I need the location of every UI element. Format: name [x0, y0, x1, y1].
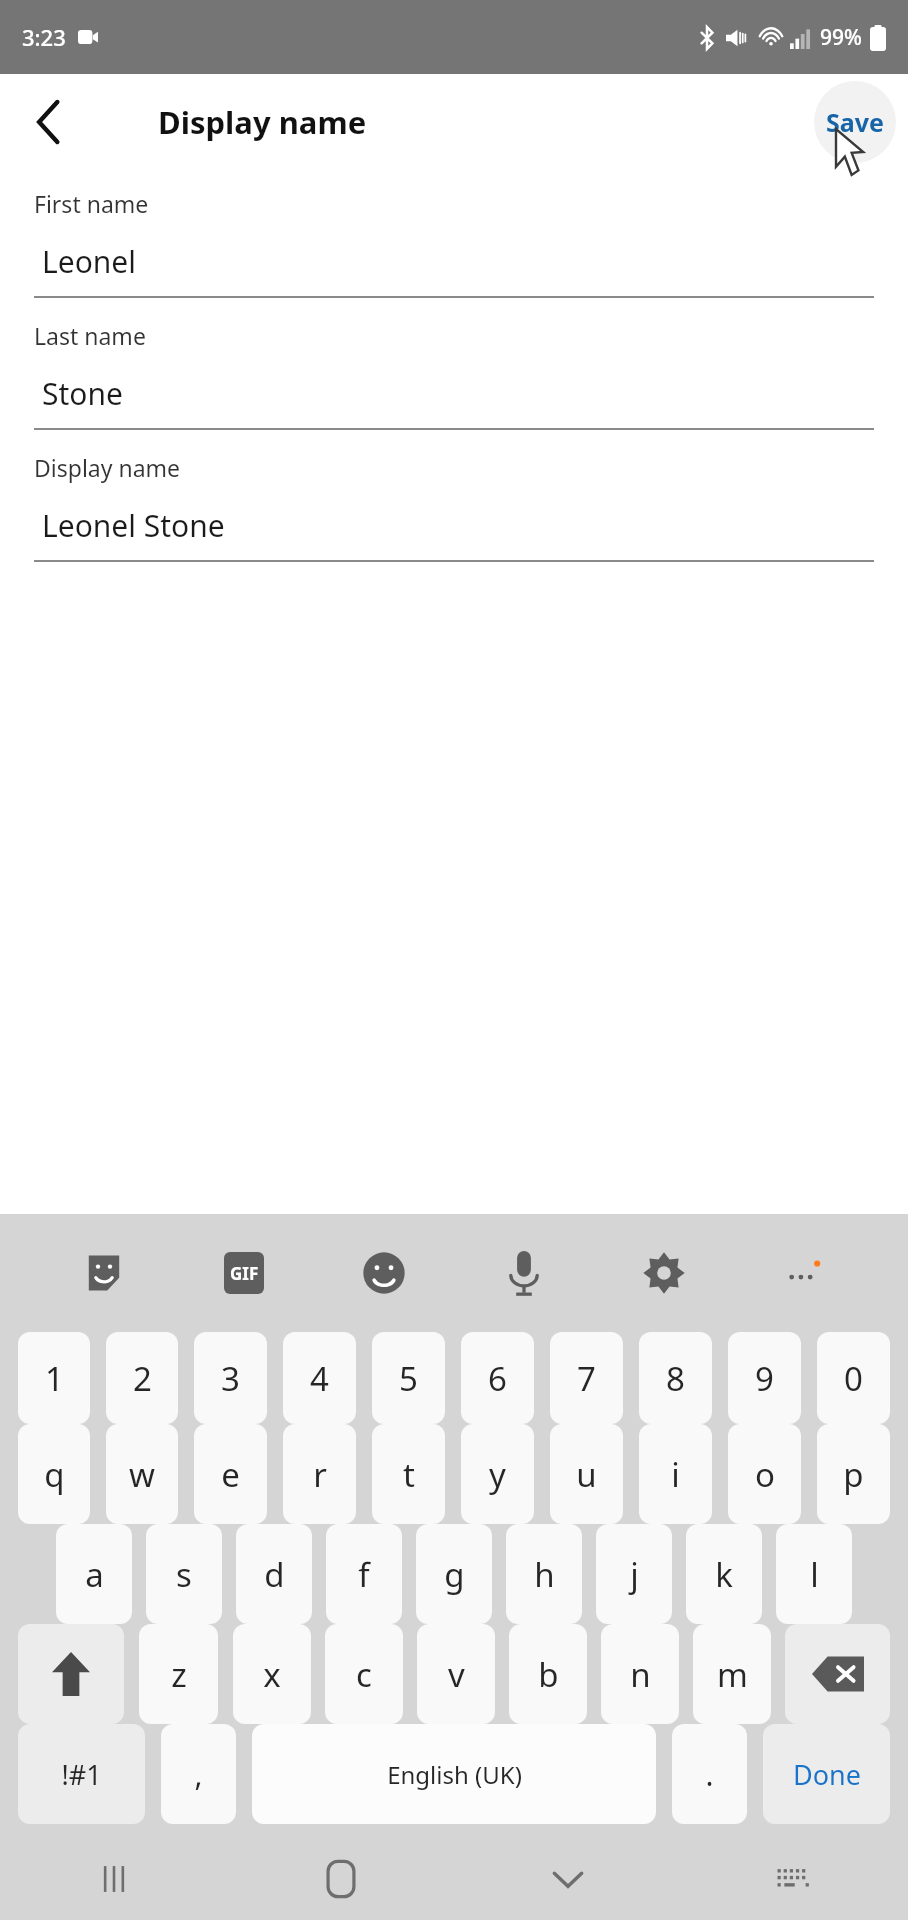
button[interactable]: Back	[18, 91, 80, 153]
button[interactable]: e	[194, 1424, 267, 1524]
button[interactable]: Recent apps	[0, 1838, 227, 1920]
button[interactable]: v	[417, 1624, 495, 1724]
button[interactable]: ,	[161, 1724, 236, 1824]
button[interactable]: Leonel	[34, 241, 874, 298]
button[interactable]: Hide keyboard	[454, 1838, 681, 1920]
button[interactable]: q	[18, 1424, 90, 1524]
staticText: 6	[488, 1356, 507, 1401]
button[interactable]: 4	[283, 1332, 356, 1424]
staticText: Last name	[34, 320, 146, 351]
button[interactable]: 5	[372, 1332, 445, 1424]
staticText: d	[264, 1552, 285, 1597]
staticText: n	[630, 1652, 651, 1697]
staticText: 7	[577, 1356, 596, 1401]
staticText: Leonel	[42, 241, 136, 282]
button[interactable]: c	[325, 1624, 403, 1724]
button[interactable]: !#1	[18, 1724, 145, 1824]
staticText: !#1	[61, 1756, 102, 1793]
staticText: 5	[399, 1356, 418, 1401]
button[interactable]: Leonel Stone	[34, 505, 874, 562]
staticText: 0	[844, 1356, 863, 1401]
staticText: v	[448, 1652, 465, 1697]
staticText: Leonel Stone	[42, 505, 225, 546]
staticText: 8	[666, 1356, 685, 1401]
staticText: u	[576, 1452, 597, 1497]
button[interactable]: 1	[18, 1332, 90, 1424]
staticText: .	[705, 1754, 714, 1795]
staticText: s	[176, 1552, 192, 1597]
staticText: w	[129, 1452, 155, 1497]
button[interactable]: 2	[106, 1332, 178, 1424]
staticText: English (UK)	[387, 1758, 522, 1791]
staticText: 9	[755, 1356, 774, 1401]
staticText: y	[489, 1452, 506, 1497]
staticText: Display name	[34, 452, 181, 483]
button[interactable]: w	[106, 1424, 178, 1524]
staticText: m	[717, 1652, 748, 1697]
button[interactable]: 0	[817, 1332, 890, 1424]
button[interactable]: z	[139, 1624, 218, 1724]
button[interactable]: g	[416, 1524, 492, 1624]
button[interactable]: 9	[728, 1332, 801, 1424]
staticText: f	[358, 1552, 370, 1597]
staticText: t	[403, 1452, 415, 1497]
staticText: Stone	[42, 373, 123, 414]
button[interactable]: Home	[227, 1838, 454, 1920]
button[interactable]: a	[56, 1524, 132, 1624]
button[interactable]: .	[672, 1724, 747, 1824]
staticText: ,	[194, 1754, 203, 1795]
button[interactable]: h	[506, 1524, 582, 1624]
button[interactable]: 7	[550, 1332, 623, 1424]
button[interactable]: l	[776, 1524, 852, 1624]
staticText: 3:23	[22, 22, 66, 52]
staticText: z	[171, 1652, 187, 1697]
button[interactable]: d	[236, 1524, 312, 1624]
button[interactable]: Shift	[18, 1624, 124, 1724]
button[interactable]: Stickers	[34, 1214, 174, 1332]
button[interactable]: English (UK)	[252, 1724, 656, 1824]
staticText: o	[755, 1452, 775, 1497]
staticText: h	[534, 1552, 555, 1597]
button[interactable]: i	[639, 1424, 712, 1524]
button[interactable]: 6	[461, 1332, 534, 1424]
staticText: a	[85, 1552, 104, 1597]
button[interactable]: x	[233, 1624, 311, 1724]
button[interactable]: m	[693, 1624, 771, 1724]
button[interactable]: Keyboard layout	[681, 1838, 908, 1920]
button[interactable]: n	[601, 1624, 679, 1724]
button[interactable]: j	[596, 1524, 672, 1624]
staticText: 2	[133, 1356, 152, 1401]
staticText: b	[538, 1652, 559, 1697]
button[interactable]: s	[146, 1524, 222, 1624]
button[interactable]: t	[372, 1424, 445, 1524]
button[interactable]: Voice input	[454, 1214, 594, 1332]
button[interactable]: 3	[194, 1332, 267, 1424]
button[interactable]: Keyboard settings	[594, 1214, 734, 1332]
button[interactable]: r	[283, 1424, 356, 1524]
button[interactable]: Done	[763, 1724, 890, 1824]
staticText: 99%	[820, 23, 862, 52]
button[interactable]: y	[461, 1424, 534, 1524]
button[interactable]: Save	[814, 81, 896, 163]
button[interactable]: p	[817, 1424, 890, 1524]
staticText: Display name	[158, 101, 367, 143]
staticText: c	[356, 1652, 372, 1697]
button[interactable]: More options	[734, 1214, 874, 1332]
button[interactable]: 8	[639, 1332, 712, 1424]
button[interactable]: Backspace	[785, 1624, 890, 1724]
button[interactable]: k	[686, 1524, 762, 1624]
staticText: GIF	[230, 1262, 259, 1285]
button[interactable]: u	[550, 1424, 623, 1524]
button[interactable]: f	[326, 1524, 402, 1624]
button[interactable]: b	[509, 1624, 587, 1724]
button[interactable]: Stone	[34, 373, 874, 430]
staticText: x	[263, 1652, 281, 1697]
button[interactable]: Emoji	[314, 1214, 454, 1332]
staticText: q	[44, 1452, 65, 1497]
button[interactable]: GIF	[174, 1214, 314, 1332]
button[interactable]: o	[728, 1424, 801, 1524]
staticText: Save	[826, 105, 884, 139]
staticText: Done	[793, 1756, 861, 1793]
staticText: l	[810, 1552, 819, 1597]
staticText: i	[671, 1452, 680, 1497]
